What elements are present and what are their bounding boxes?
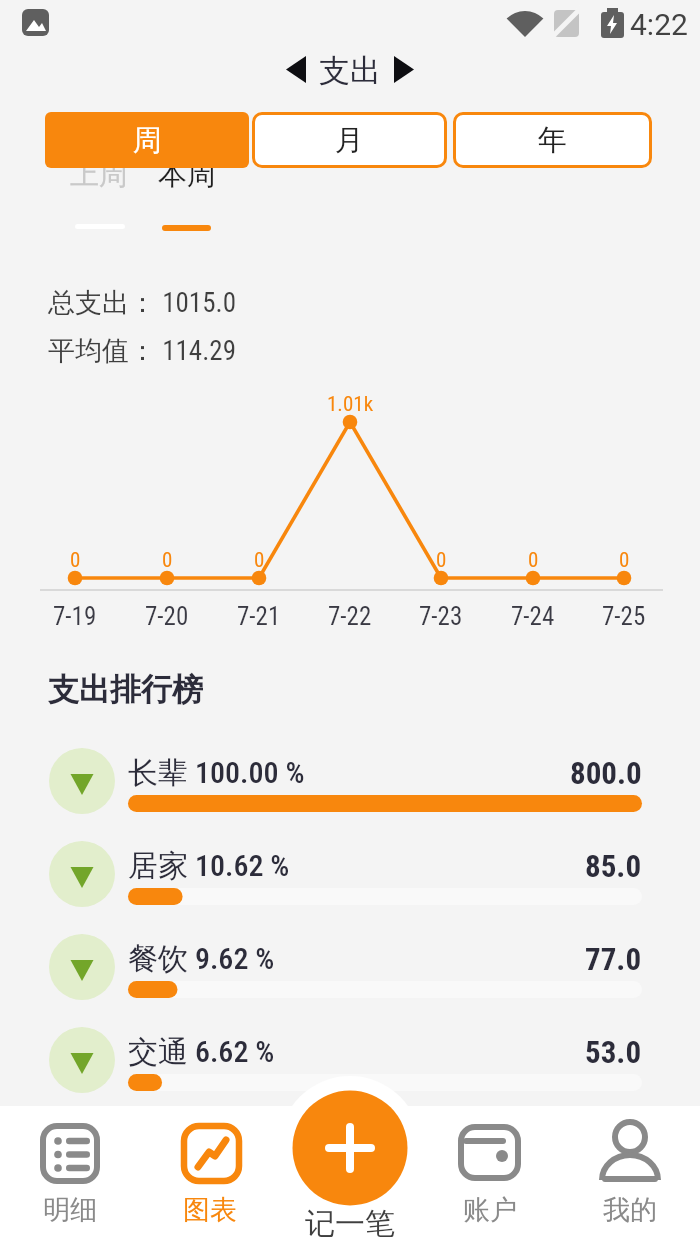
staticText: 53.0	[585, 1034, 642, 1070]
staticText: 交通 6.62 %	[128, 1033, 275, 1071]
staticText: 0	[162, 548, 173, 573]
staticText: 77.0	[585, 941, 642, 977]
button[interactable]: 本周	[158, 155, 228, 193]
staticText: 记一笔	[305, 1205, 395, 1243]
staticText: 85.0	[585, 848, 642, 884]
staticText: 7-24	[511, 602, 555, 631]
button[interactable]	[280, 1080, 420, 1244]
button[interactable]	[40, 1020, 660, 1106]
staticText: 1.01k	[327, 392, 374, 417]
staticText: 0	[619, 548, 630, 573]
staticText: 7-19	[53, 602, 97, 631]
staticText: 800.0	[570, 755, 642, 791]
button[interactable]	[0, 1106, 140, 1244]
staticText: 7-23	[419, 602, 463, 631]
button[interactable]: 年	[453, 112, 652, 168]
staticText: 7-20	[145, 602, 189, 631]
button[interactable]	[560, 1106, 700, 1244]
staticText: 餐饮 9.62 %	[128, 940, 275, 978]
staticText: 月	[335, 122, 364, 159]
button[interactable]: 月	[252, 112, 447, 168]
button[interactable]: 上周	[70, 155, 140, 193]
staticText: 4:22	[630, 7, 688, 42]
button[interactable]	[40, 927, 660, 1013]
staticText: 7-25	[602, 602, 646, 631]
staticText: 总支出： 1015.0	[48, 286, 236, 320]
staticText: 图表	[183, 1193, 237, 1227]
staticText: 长辈 100.00 %	[128, 754, 305, 792]
staticText: 周	[133, 122, 162, 159]
staticText: 支出	[319, 51, 381, 90]
staticText: 0	[436, 548, 447, 573]
button[interactable]: 周	[45, 112, 249, 168]
staticText: 0	[528, 548, 539, 573]
button[interactable]	[140, 1106, 280, 1244]
staticText: 0	[70, 548, 81, 573]
staticText: 年	[538, 122, 567, 159]
staticText: 居家 10.62 %	[128, 847, 290, 885]
staticText: 0	[254, 548, 265, 573]
staticText: 明细	[43, 1193, 97, 1227]
staticText: 我的	[603, 1193, 657, 1227]
staticText: 账户	[463, 1193, 517, 1227]
staticText: 7-22	[328, 602, 372, 631]
staticText: 本周	[158, 156, 216, 193]
button[interactable]	[420, 1106, 560, 1244]
staticText: 支出排行榜	[48, 670, 203, 708]
button[interactable]	[40, 834, 660, 920]
staticText: 上周	[70, 156, 128, 193]
button[interactable]	[40, 741, 660, 827]
staticText: 7-21	[237, 602, 281, 631]
staticText: 平均值： 114.29	[48, 334, 236, 368]
